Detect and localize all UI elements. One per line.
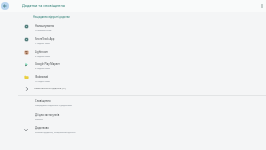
- staticText: 2 години тому: [35, 55, 51, 58]
- button[interactable]: Lightroom: [0, 49, 266, 62]
- staticText: Переглянути всі додатки (41): [34, 87, 66, 90]
- staticText: Дії для застосунків: [35, 113, 60, 117]
- staticText: SnoreTrack App: [35, 37, 55, 41]
- staticText: Google Play Маркет: [35, 62, 60, 66]
- button[interactable]: Back: [1, 2, 9, 10]
- staticText: Оплата: [35, 118, 43, 121]
- staticText: Додатки та сповіщення: [22, 3, 65, 8]
- button[interactable]: Сповіщення: [0, 98, 266, 111]
- button[interactable]: Переглянути всі додатки (41): [0, 85, 266, 94]
- staticText: Файловий: [35, 75, 49, 79]
- staticText: Сповіщення: [35, 99, 51, 103]
- staticText: Lightroom: [35, 50, 48, 54]
- staticText: Нещодавно відкриті додатки: [33, 15, 70, 18]
- staticText: 13 хвилин тому: [35, 29, 52, 32]
- staticText: Налаштування: [35, 24, 55, 28]
- button[interactable]: Додатково: [0, 125, 266, 138]
- button[interactable]: Налаштування: [0, 23, 266, 36]
- staticText: 12 годин тому: [35, 80, 50, 83]
- staticText: Основні додатки, Спеціальний доступ: [35, 131, 76, 134]
- staticText: Нещодавно надіслані 3 додатками: [35, 104, 72, 107]
- staticText: 3 години тому: [35, 67, 51, 70]
- staticText: Додатково: [35, 126, 49, 130]
- button[interactable]: Google Play Маркет: [0, 61, 266, 74]
- button[interactable]: Дії для застосунків: [0, 112, 266, 125]
- staticText: 1 годину тому: [35, 42, 50, 45]
- button[interactable]: SnoreTrack App: [0, 36, 266, 49]
- button[interactable]: Файловий: [0, 74, 266, 87]
